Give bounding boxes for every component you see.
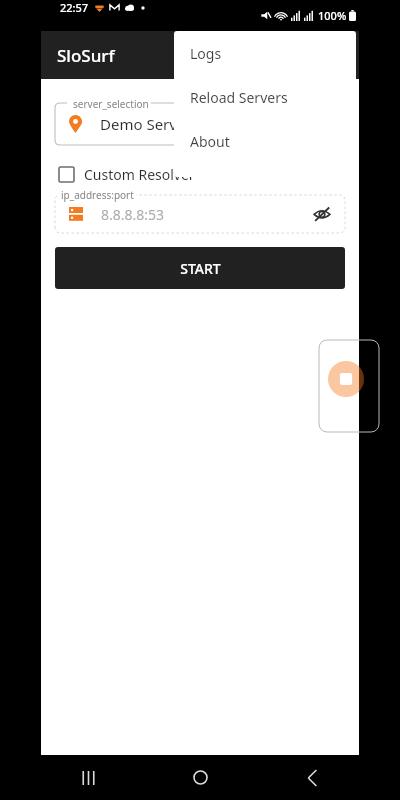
staticText: START	[180, 259, 221, 278]
button[interactable]: Custom Resolver	[55, 161, 195, 187]
button[interactable]: Back	[288, 755, 336, 800]
staticText: Reload Servers	[190, 88, 288, 107]
button[interactable]: server_selection	[55, 103, 345, 145]
button[interactable]: Reload Servers	[174, 75, 356, 119]
button[interactable]: ip_address:port	[55, 195, 345, 233]
staticText: Custom Resolver	[84, 165, 195, 184]
staticText: 8.8.8.8:53	[101, 205, 165, 224]
staticText: 100%	[318, 8, 347, 23]
staticText: Logs	[190, 44, 222, 63]
staticText: 22:57	[60, 0, 89, 15]
button[interactable]: Home	[176, 755, 224, 800]
button[interactable]: START	[55, 247, 345, 289]
button[interactable]: About	[174, 119, 356, 163]
staticText: ip_address:port	[61, 188, 134, 202]
staticText: Demo Server	[100, 114, 192, 134]
staticText: About	[190, 132, 230, 151]
button[interactable]: Stop	[328, 361, 364, 397]
button[interactable]: Recents	[64, 755, 112, 800]
staticText: server_selection	[73, 97, 149, 111]
button[interactable]: Logs	[174, 31, 356, 75]
button[interactable]: Show password	[311, 203, 333, 225]
staticText: SloSurf	[57, 44, 115, 67]
